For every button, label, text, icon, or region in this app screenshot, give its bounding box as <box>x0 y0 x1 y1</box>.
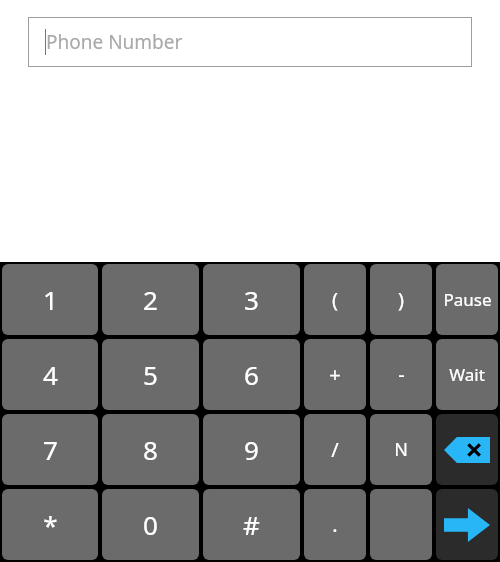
button[interactable]: 2 <box>102 264 199 335</box>
staticText: 5 <box>143 357 158 392</box>
button[interactable]: 8 <box>102 414 199 485</box>
staticText: 0 <box>143 507 158 542</box>
staticText: 7 <box>43 432 58 467</box>
staticText: 6 <box>244 357 259 392</box>
button[interactable]: 9 <box>203 414 300 485</box>
button[interactable]: 6 <box>203 339 300 410</box>
button[interactable]: 0 <box>102 489 199 560</box>
button[interactable]: ) <box>370 264 432 335</box>
staticText: + <box>329 361 341 388</box>
staticText: 4 <box>43 357 58 392</box>
staticText: 2 <box>143 282 158 317</box>
staticText: Pause <box>443 288 492 311</box>
staticText: Wait <box>449 363 485 386</box>
staticText: ( <box>332 286 338 313</box>
button[interactable]: * <box>2 489 98 560</box>
button[interactable]: Phone Number <box>28 17 472 67</box>
staticText: N <box>394 437 408 462</box>
staticText: * <box>43 507 58 542</box>
staticText: # <box>243 507 260 542</box>
button[interactable]: Wait <box>436 339 498 410</box>
button[interactable]: 1 <box>2 264 98 335</box>
button[interactable]: # <box>203 489 300 560</box>
button[interactable]: 7 <box>2 414 98 485</box>
staticText: 9 <box>244 432 259 467</box>
button[interactable]: ( <box>304 264 366 335</box>
button[interactable]: / <box>304 414 366 485</box>
staticText: ) <box>398 286 404 313</box>
staticText: 8 <box>143 432 158 467</box>
staticText: 1 <box>43 282 58 317</box>
button[interactable]: Pause <box>436 264 498 335</box>
button[interactable]: + <box>304 339 366 410</box>
button[interactable]: . <box>304 489 366 560</box>
button[interactable]: N <box>370 414 432 485</box>
staticText: - <box>398 361 405 388</box>
staticText: / <box>331 436 339 463</box>
staticText: . <box>332 511 338 538</box>
button[interactable]: 4 <box>2 339 98 410</box>
button[interactable]: - <box>370 339 432 410</box>
button[interactable] <box>370 489 432 560</box>
staticText: 3 <box>244 282 259 317</box>
staticText: Phone Number <box>46 29 183 55</box>
button[interactable]: 5 <box>102 339 199 410</box>
button[interactable]: Enter <box>436 489 498 560</box>
button[interactable]: Backspace <box>436 414 498 485</box>
button[interactable]: 3 <box>203 264 300 335</box>
